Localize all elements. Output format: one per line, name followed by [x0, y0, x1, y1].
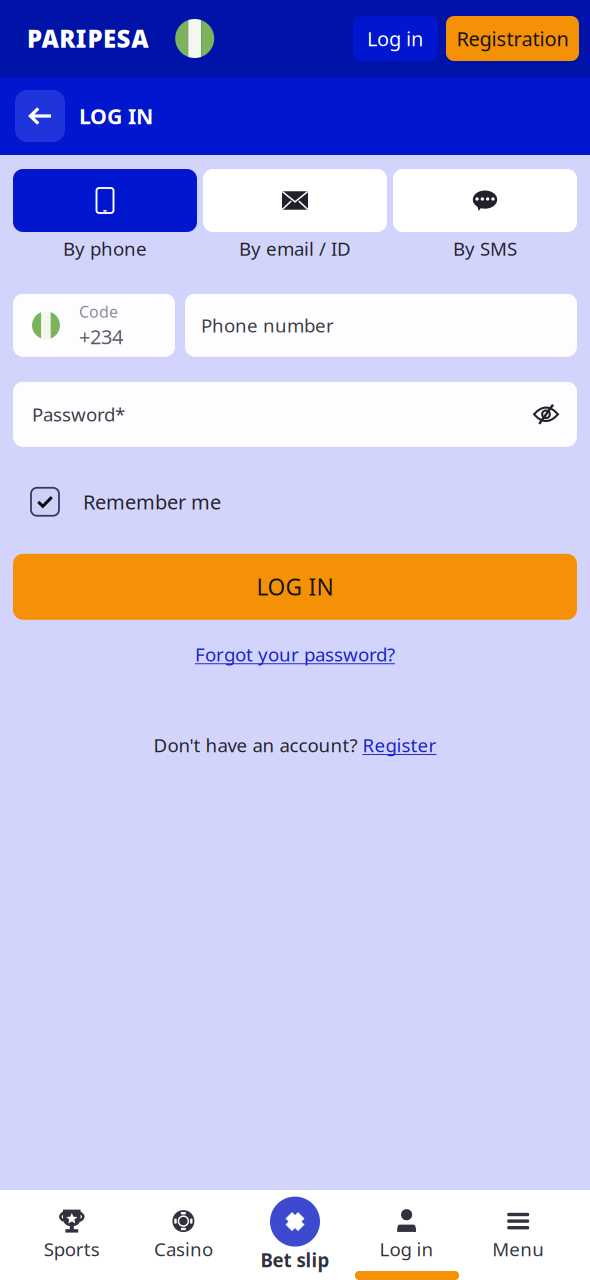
button[interactable]: Register: [362, 733, 436, 757]
button[interactable]: By SMS: [393, 169, 577, 261]
staticText: +234: [79, 323, 123, 350]
staticText: Code: [79, 301, 118, 322]
button[interactable]: Sports: [16, 1208, 128, 1261]
staticText: Menu: [492, 1237, 544, 1261]
staticText: Casino: [154, 1237, 213, 1261]
button[interactable]: By phone: [13, 169, 197, 261]
staticText: LOG IN: [256, 572, 333, 602]
button[interactable]: Password*: [13, 382, 577, 447]
button[interactable]: Log in: [353, 16, 437, 61]
button[interactable]: Forgot your password?: [195, 634, 395, 675]
button[interactable]: Back: [15, 90, 65, 142]
staticText: Bet slip: [260, 1248, 329, 1272]
button[interactable]: Phone number: [185, 294, 577, 357]
staticText: By SMS: [453, 236, 517, 261]
button[interactable]: Casino: [128, 1208, 239, 1261]
staticText: By phone: [63, 236, 147, 261]
button[interactable]: Code: [13, 294, 175, 357]
staticText: PARIPESA: [27, 23, 148, 54]
button[interactable]: Bet slip: [239, 1197, 351, 1272]
button[interactable]: Remember me: [13, 480, 577, 524]
staticText: Sports: [44, 1237, 100, 1261]
staticText: Phone number: [201, 313, 334, 338]
staticText: Log in: [367, 25, 423, 52]
staticText: Don't have an account?: [153, 733, 362, 757]
staticText: Remember me: [83, 488, 221, 515]
staticText: Registration: [456, 25, 568, 52]
button[interactable]: Registration: [446, 16, 579, 61]
staticText: Log in: [380, 1237, 434, 1261]
button[interactable]: LOG IN: [13, 554, 577, 620]
staticText: Password*: [32, 402, 125, 427]
button[interactable]: Log in: [351, 1208, 462, 1261]
staticText: Register: [362, 733, 436, 757]
button[interactable]: Menu: [462, 1208, 574, 1261]
staticText: By email / ID: [239, 236, 351, 261]
staticText: Forgot your password?: [195, 642, 395, 667]
button[interactable]: By email / ID: [203, 169, 387, 261]
staticText: LOG IN: [79, 102, 153, 130]
